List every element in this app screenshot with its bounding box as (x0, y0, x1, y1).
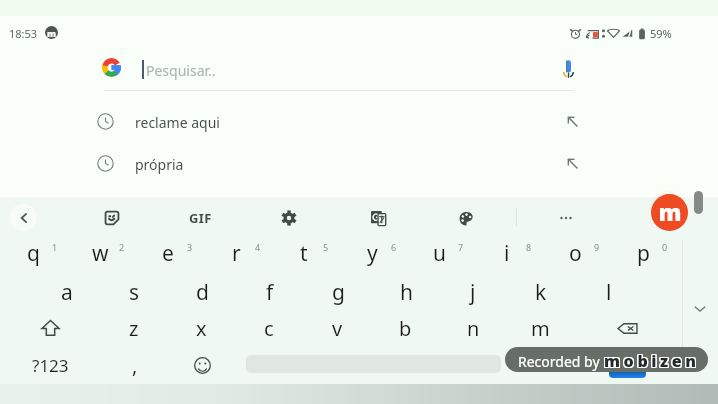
button[interactable]: u (406, 233, 472, 273)
button[interactable]: More options (552, 204, 580, 232)
staticText: mobizen (603, 349, 699, 371)
staticText: i (504, 239, 510, 268)
staticText: 5 (323, 241, 329, 253)
button[interactable]: ?123 (17, 347, 83, 383)
button[interactable]: o (542, 233, 608, 273)
staticText: m (47, 27, 57, 39)
staticText: k (535, 278, 547, 307)
button[interactable]: b (372, 310, 438, 346)
staticText: 8 (526, 241, 532, 253)
staticText: 18:53 (9, 26, 38, 41)
staticText: d (196, 278, 209, 307)
button[interactable]: v (304, 310, 370, 346)
button[interactable]: i (474, 233, 540, 273)
staticText: f (266, 278, 274, 307)
button[interactable]: c (236, 310, 302, 346)
button[interactable]: Emoji (169, 347, 235, 383)
button[interactable]: z (101, 310, 167, 346)
staticText: ?123 (32, 354, 69, 377)
staticText: h (400, 278, 413, 307)
staticText: Pesquisar.. (146, 61, 216, 80)
staticText: 59% (650, 26, 672, 41)
staticText: mobizen (604, 349, 700, 371)
staticText: , (132, 352, 138, 379)
staticText: w (92, 239, 109, 268)
button[interactable]: Mobizen recorder (651, 194, 688, 231)
staticText: 0 (662, 241, 668, 253)
staticText: GIF (189, 209, 212, 227)
staticText: y (367, 239, 378, 268)
button[interactable]: Voice search (557, 58, 579, 80)
staticText: s (129, 278, 140, 307)
button[interactable]: Stickers (98, 204, 126, 232)
staticText: e (162, 239, 174, 268)
staticText: própria (135, 155, 184, 174)
staticText: 2 (119, 241, 125, 253)
button[interactable]: própria (0, 145, 718, 184)
staticText: z (129, 315, 139, 342)
button[interactable]: Backspace (594, 310, 660, 346)
button[interactable]: Themes (452, 204, 480, 232)
button[interactable]: GIF (178, 205, 222, 230)
staticText: o (569, 239, 582, 268)
staticText: p (637, 239, 650, 268)
staticText: t (300, 239, 308, 268)
staticText: 4 (255, 241, 261, 253)
staticText: m (658, 196, 682, 227)
button[interactable]: n (440, 310, 506, 346)
button[interactable]: w (67, 233, 133, 273)
button[interactable]: Hide keyboard (688, 297, 711, 320)
button[interactable]: h (373, 274, 439, 311)
staticText: u (433, 239, 446, 268)
button[interactable]: j (440, 274, 506, 311)
staticText: mobizen (605, 351, 701, 372)
staticText: j (470, 278, 476, 307)
staticText: b (399, 315, 412, 342)
staticText: g (332, 278, 345, 307)
button[interactable]: s (101, 274, 167, 311)
staticText: mobizen (605, 350, 701, 372)
button[interactable]: a (34, 274, 100, 311)
staticText: 1 (52, 241, 58, 253)
button[interactable]: k (508, 274, 574, 311)
button[interactable]: l (576, 274, 642, 311)
staticText: mobizen (604, 351, 700, 372)
button[interactable]: e (135, 233, 201, 273)
staticText: v (332, 315, 343, 342)
button[interactable]: g (305, 274, 371, 311)
button[interactable]: m (507, 310, 573, 346)
button[interactable]: Back (10, 204, 37, 231)
staticText: r (232, 239, 241, 268)
button[interactable]: q (0, 233, 66, 273)
staticText: m (531, 315, 550, 342)
button[interactable]: f (237, 274, 303, 311)
button[interactable]: p (610, 233, 676, 273)
staticText: mobizen (605, 349, 701, 371)
staticText: a (61, 278, 73, 307)
staticText: mobizen (604, 350, 700, 372)
staticText: c (264, 315, 274, 342)
button[interactable]: reclame aqui (0, 103, 718, 142)
staticText: 7 (458, 241, 464, 253)
button[interactable]: y (339, 233, 405, 273)
staticText: 9 (594, 241, 600, 253)
staticText: mobizen (603, 350, 699, 372)
button[interactable]: Settings (275, 204, 303, 232)
staticText: q (27, 239, 40, 268)
button[interactable]: x (168, 310, 234, 346)
button[interactable]: Translate (364, 204, 392, 232)
staticText: 3 (187, 241, 193, 253)
staticText: mobizen (603, 351, 699, 372)
staticText: reclame aqui (135, 113, 220, 132)
button[interactable]: d (169, 274, 235, 311)
staticText: x (196, 315, 207, 342)
staticText: n (467, 315, 480, 342)
button[interactable]: Shift (17, 310, 83, 346)
button[interactable]: , (102, 347, 168, 383)
button[interactable]: t (271, 233, 337, 273)
staticText: 6 (391, 241, 397, 253)
staticText: Recorded by (518, 352, 600, 371)
staticText: l (606, 278, 612, 307)
button[interactable]: r (203, 233, 269, 273)
